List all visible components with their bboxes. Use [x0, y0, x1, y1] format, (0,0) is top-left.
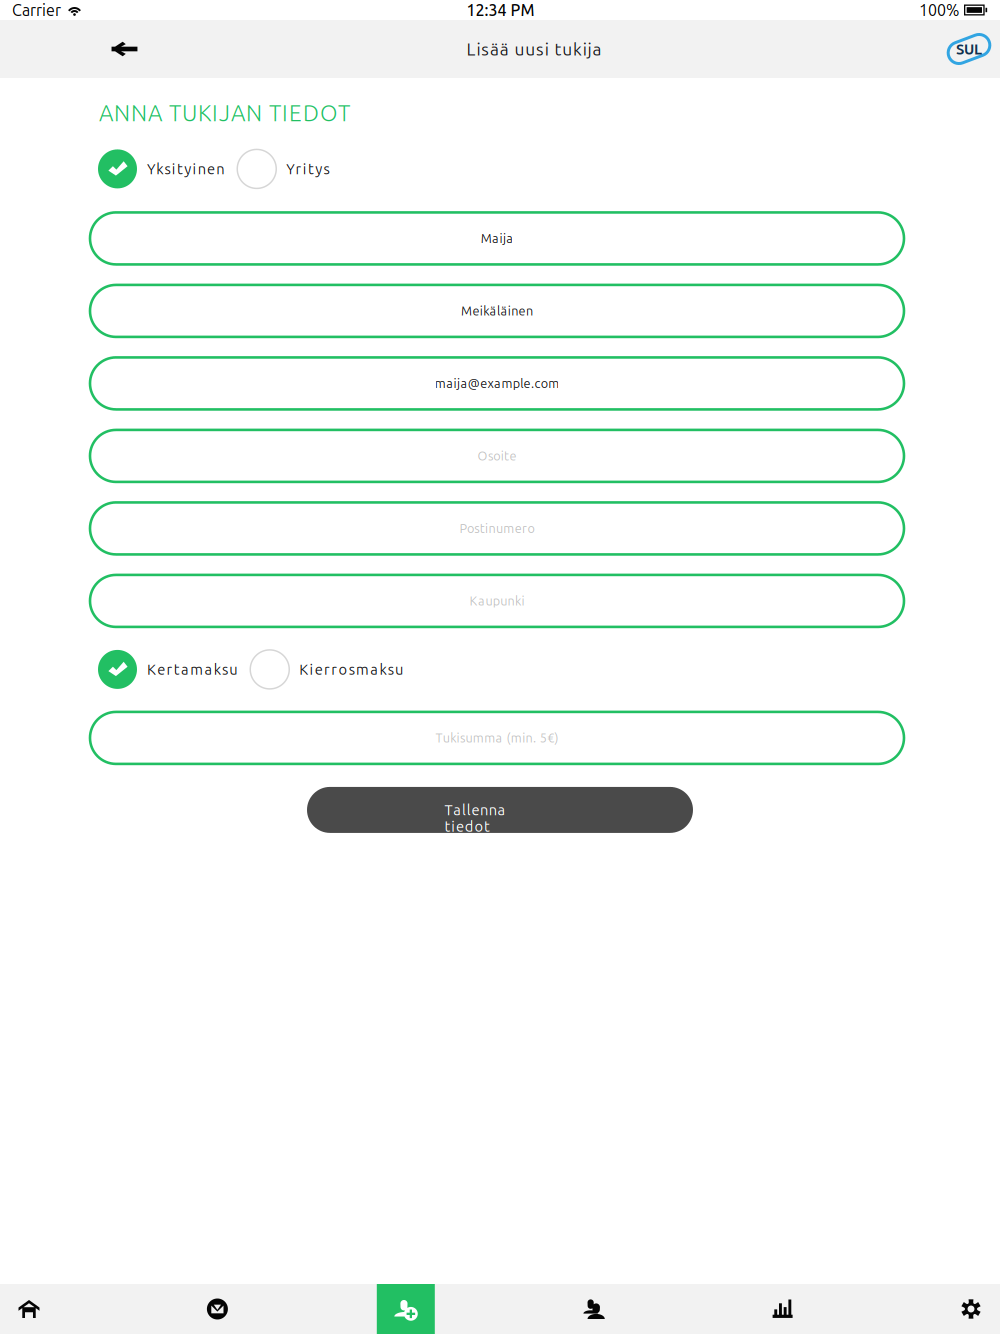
staticText: Carrier — [12, 1, 61, 19]
button[interactable]: Kaupunki — [90, 575, 904, 627]
button[interactable]: Meikäläinen — [90, 285, 904, 337]
staticText: Kaupunki — [470, 594, 524, 608]
button[interactable]: Yksityinen — [98, 149, 224, 188]
staticText: Maija — [481, 231, 513, 245]
button[interactable]: Yritys — [237, 149, 329, 188]
button[interactable]: Contacts — [565, 1284, 623, 1334]
staticText: Kierrosmaksu — [299, 661, 403, 678]
button[interactable]: Tallenna tiedot — [307, 787, 693, 833]
staticText: Kertamaksu — [147, 661, 237, 678]
button[interactable]: Back — [96, 22, 152, 76]
button[interactable]: Add supporter — [377, 1284, 435, 1334]
button[interactable]: Tukisumma (min. 5€) — [90, 712, 904, 764]
staticText: Yksityinen — [147, 161, 224, 177]
staticText: 100% — [919, 1, 959, 19]
button[interactable]: SUL — [938, 22, 1000, 76]
staticText: Postinumero — [459, 521, 534, 535]
button[interactable]: Home — [0, 1284, 58, 1334]
staticText: 12:34 PM — [466, 1, 534, 19]
button[interactable]: Kierrosmaksu — [250, 650, 403, 689]
staticText: maija@example.com — [435, 376, 559, 390]
button[interactable]: Osoite — [90, 430, 904, 482]
staticText: Tukisumma (min. 5€) — [435, 731, 559, 745]
button[interactable]: Settings — [942, 1284, 1000, 1334]
staticText: SUL — [956, 41, 982, 57]
staticText: ANNA TUKIJAN TIEDOT — [99, 100, 350, 125]
button[interactable]: Maija — [90, 212, 904, 264]
staticText: Meikäläinen — [461, 304, 533, 318]
button[interactable]: Postinumero — [90, 502, 904, 554]
button[interactable]: Statistics — [754, 1284, 812, 1334]
staticText: Osoite — [477, 449, 516, 463]
button[interactable]: maija@example.com — [90, 357, 904, 409]
staticText: Tallenna tiedot — [445, 802, 555, 818]
button[interactable]: Kertamaksu — [98, 650, 237, 689]
staticText: Yritys — [286, 161, 329, 177]
button[interactable]: Messages — [188, 1284, 246, 1334]
staticText: Lisää uusi tukija — [467, 39, 601, 59]
